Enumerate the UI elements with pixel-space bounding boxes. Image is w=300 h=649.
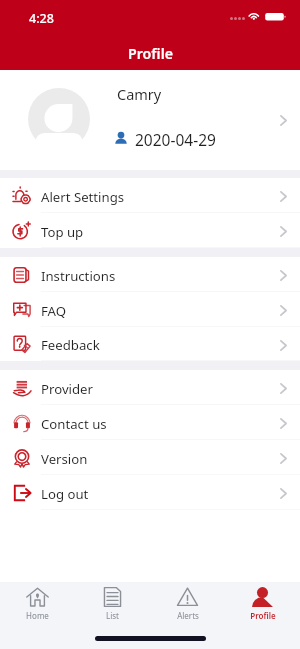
button[interactable]: Profile xyxy=(225,582,300,621)
staticText: Alert Settings xyxy=(41,188,125,206)
button[interactable]: FAQ xyxy=(0,292,300,327)
staticText: Instructions xyxy=(41,267,116,285)
staticText: Feedback xyxy=(41,336,100,354)
staticText: Alerts xyxy=(177,610,199,621)
staticText: Contact us xyxy=(41,415,107,433)
button[interactable]: List xyxy=(75,582,150,621)
staticText: FAQ xyxy=(41,302,67,320)
button[interactable]: Contact us xyxy=(0,405,300,440)
button[interactable]: Log out xyxy=(0,475,300,510)
button[interactable]: Alerts xyxy=(150,582,225,621)
other: Open profile details xyxy=(280,115,287,126)
staticText: Camry xyxy=(117,84,162,104)
staticText: List xyxy=(106,610,119,621)
staticText: Top up xyxy=(41,223,84,241)
button[interactable]: Provider xyxy=(0,370,300,405)
staticText: Home xyxy=(26,610,49,621)
button[interactable]: Alert Settings xyxy=(0,178,300,213)
staticText: Profile xyxy=(250,610,276,621)
button[interactable]: Camry xyxy=(0,70,300,170)
staticText: 2020-04-29 xyxy=(135,129,216,150)
staticText: 4:28 xyxy=(29,10,54,27)
button[interactable]: Version xyxy=(0,440,300,475)
staticText: Version xyxy=(41,450,88,468)
button[interactable]: Feedback xyxy=(0,327,300,361)
button[interactable]: Home xyxy=(0,582,75,621)
button[interactable]: Instructions xyxy=(0,257,300,292)
staticText: Provider xyxy=(41,380,93,398)
staticText: Profile xyxy=(128,44,173,63)
button[interactable]: Top up xyxy=(0,213,300,248)
staticText: Log out xyxy=(41,485,89,503)
